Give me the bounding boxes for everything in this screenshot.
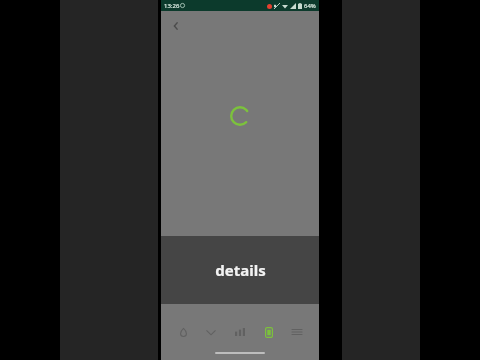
button[interactable]: Water bbox=[170, 322, 196, 342]
staticText: 13:26 bbox=[164, 2, 180, 10]
staticText: details bbox=[215, 260, 266, 280]
staticText: 64% bbox=[304, 2, 316, 10]
button[interactable]: Back bbox=[165, 15, 187, 37]
button[interactable]: Network bbox=[198, 322, 224, 342]
button[interactable]: Stats bbox=[227, 322, 253, 342]
button[interactable]: Menu bbox=[284, 322, 310, 342]
button[interactable]: details bbox=[161, 236, 319, 304]
button[interactable]: Device bbox=[256, 322, 282, 342]
